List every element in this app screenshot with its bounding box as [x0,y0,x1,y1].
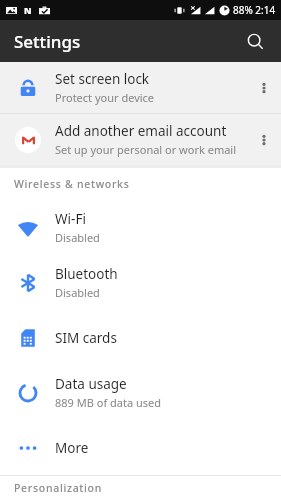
staticText: Set screen lock [55,70,150,88]
staticText: Settings [14,30,81,53]
staticText: Set up your personal or work email [55,142,237,157]
staticText: Disabled [55,230,100,245]
staticText: 889 MB of data used [55,395,161,410]
staticText: More [55,439,89,457]
staticText: Personalization [14,481,103,495]
button[interactable]: Set screen lock [0,62,281,113]
button[interactable]: Data usage [0,365,281,420]
staticText: SIM cards [55,329,117,347]
staticText: Disabled [55,285,100,300]
staticText: Add another email account [55,122,227,140]
button[interactable]: Wi-Fi [0,200,281,255]
button[interactable]: SIM cards [0,310,281,365]
staticText: Protect your device [55,90,155,105]
staticText: 88% 2:14 [233,3,276,17]
staticText: N [24,4,32,16]
button[interactable]: More options [247,114,281,165]
button[interactable]: More [0,420,281,475]
staticText: Wi-Fi [55,210,86,228]
staticText: Data usage [55,375,127,393]
staticText: Wireless & networks [14,177,130,191]
button[interactable]: More options [247,62,281,113]
button[interactable]: Add another email account [0,114,281,165]
staticText: Bluetooth [55,265,118,283]
button[interactable]: Search [237,23,273,59]
button[interactable]: Bluetooth [0,255,281,310]
